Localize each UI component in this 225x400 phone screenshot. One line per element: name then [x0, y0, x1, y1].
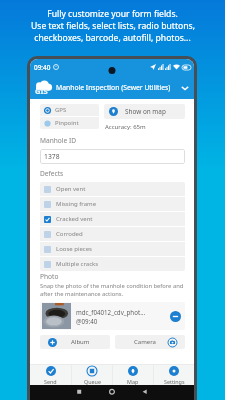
staticText: checkboxes, barcode, autofill, photos...	[34, 32, 191, 44]
staticText: Send	[44, 378, 57, 385]
staticText: Photo	[40, 272, 59, 281]
button[interactable]: Cracked vent	[40, 212, 185, 226]
staticText: Accuracy: 65m	[105, 123, 146, 131]
staticText: Queue	[84, 378, 101, 385]
button[interactable]: Camera	[115, 335, 185, 349]
staticText: Show on map	[125, 107, 166, 116]
button[interactable]: 1378	[40, 149, 185, 164]
button[interactable]: Loose pieces	[40, 242, 185, 256]
button[interactable]: Show on map	[104, 104, 185, 119]
staticText: Snap the photo of the manhole condition …	[40, 282, 185, 298]
staticText: Fully customize your form fields.	[47, 8, 178, 20]
staticText: @09:40	[76, 317, 98, 325]
staticText: Loose pieces	[56, 245, 92, 253]
button[interactable]: Open vent	[40, 182, 185, 196]
button[interactable]: Pinpoint	[40, 117, 99, 129]
button[interactable]: Remove photo	[170, 311, 181, 322]
staticText: Camera	[134, 338, 156, 346]
staticText: Pinpoint	[55, 119, 79, 127]
button[interactable]: GPS	[40, 104, 99, 116]
staticText: Cracked vent	[56, 215, 93, 223]
staticText: Album	[71, 338, 90, 346]
staticText: Map	[127, 378, 139, 385]
button[interactable]: Map	[113, 365, 153, 385]
staticText: Settings	[164, 378, 185, 385]
staticText: GPS	[55, 106, 67, 114]
button[interactable]: Multiple cracks	[40, 257, 185, 271]
staticText: 1378	[44, 152, 60, 161]
staticText: GIS	[35, 86, 48, 96]
staticText: Open vent	[56, 185, 86, 193]
button[interactable]: Album	[40, 335, 110, 349]
staticText: Corroded	[56, 230, 83, 238]
staticText: 09:40	[34, 63, 51, 72]
staticText: Use text fields, select lists, radio but…	[31, 20, 195, 32]
button[interactable]: Missing frame	[40, 197, 185, 211]
button[interactable]: Queue	[72, 365, 112, 385]
button[interactable]: Settings	[154, 365, 194, 385]
button[interactable]: Send	[30, 365, 71, 385]
staticText: Manhole Inspection (Sewer Utilities)	[56, 83, 177, 92]
staticText: Manhole ID	[40, 136, 77, 145]
staticText: Multiple cracks	[56, 260, 99, 268]
button[interactable]: Corroded	[40, 227, 185, 241]
button[interactable]: Choose form	[179, 82, 190, 93]
staticText: Missing frame	[56, 200, 97, 208]
staticText: Defects	[40, 169, 64, 178]
staticText: mdc_f04012_cdv_phot...	[76, 308, 146, 316]
